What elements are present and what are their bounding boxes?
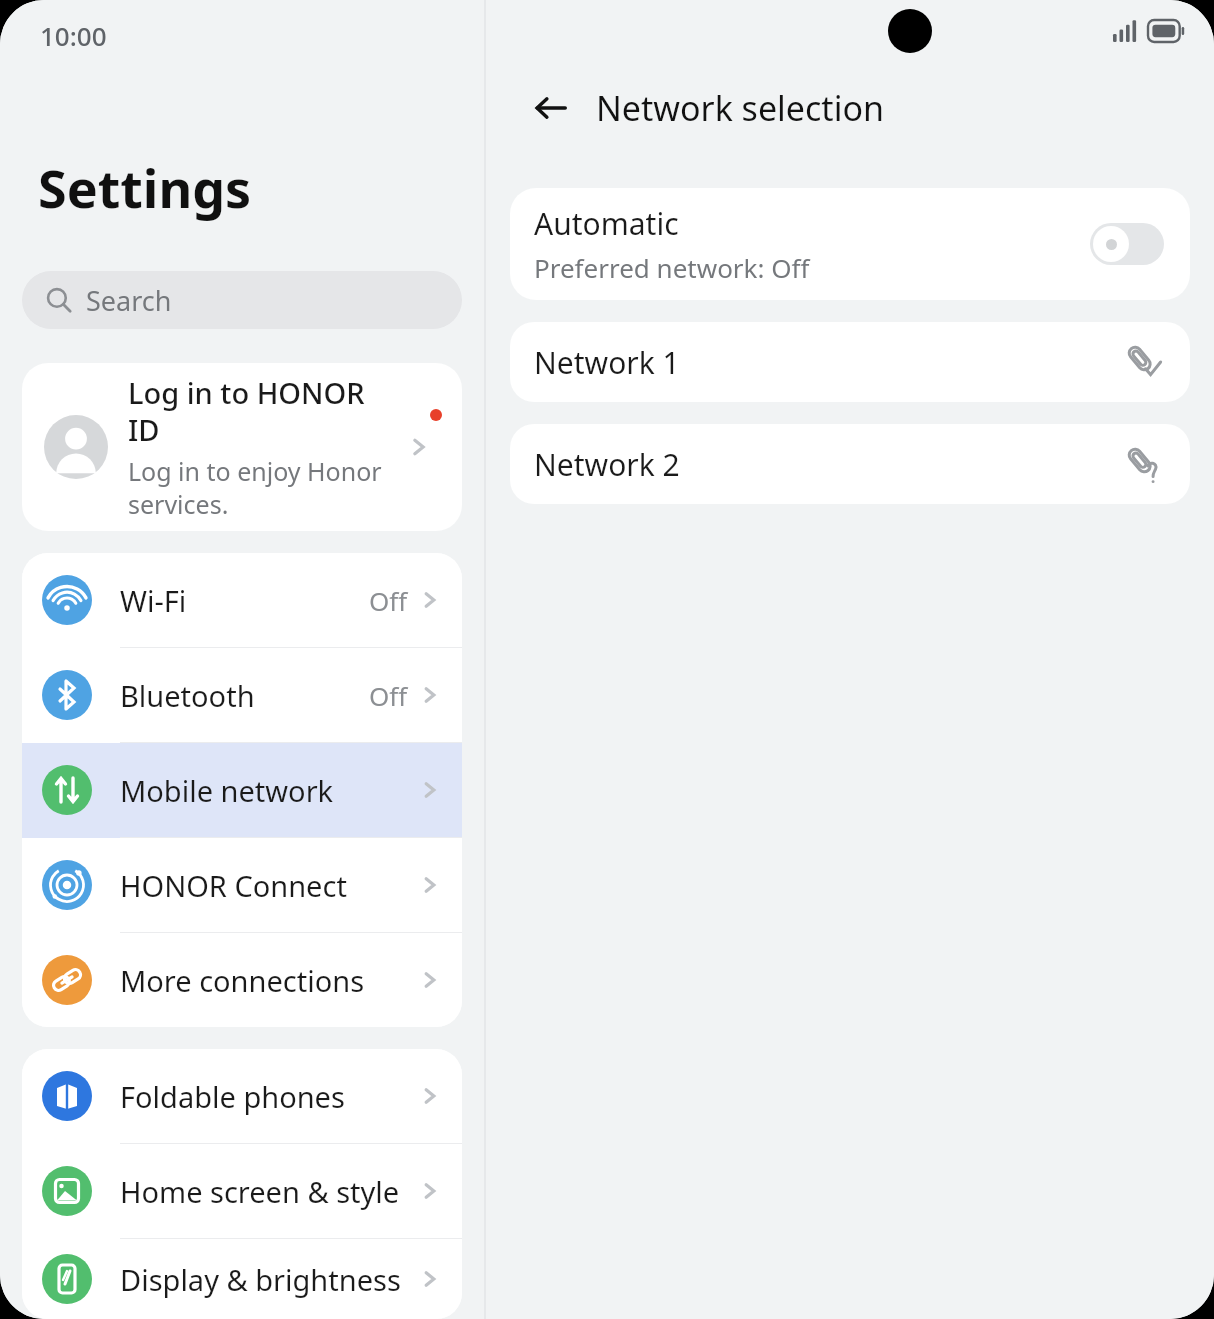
staticText: Foldable phones <box>120 1077 418 1116</box>
staticText: Automatic <box>534 203 679 244</box>
staticText: Bluetooth <box>120 676 369 715</box>
staticText: Settings <box>38 152 252 223</box>
button[interactable]: Network 2 <box>510 424 1190 504</box>
staticText: Off <box>369 583 408 618</box>
staticText: Wi-Fi <box>120 581 369 620</box>
button[interactable]: Network 1 <box>510 322 1190 402</box>
staticText: Preferred network: Off <box>534 250 810 285</box>
staticText: Network selection <box>596 85 884 131</box>
button[interactable]: Home screen & style <box>22 1144 462 1239</box>
button[interactable]: Wi-Fi <box>22 553 462 648</box>
staticText: Search <box>86 282 172 319</box>
staticText: Network 1 <box>534 342 1122 383</box>
button[interactable]: Log in to HONOR ID <box>22 363 462 531</box>
staticText: Log in to HONOR ID <box>128 373 396 450</box>
button[interactable]: Automatic toggle <box>1090 223 1164 265</box>
staticText: More connections <box>120 961 418 1000</box>
staticText: Mobile network <box>120 771 418 810</box>
staticText: Off <box>369 678 408 713</box>
staticText: Log in to enjoy Honor services. <box>128 454 396 521</box>
staticText: 10:00 <box>40 18 107 53</box>
staticText: Network 2 <box>534 444 1122 485</box>
button[interactable]: Automatic <box>510 188 1190 300</box>
button[interactable]: Foldable phones <box>22 1049 462 1144</box>
staticText: Display & brightness <box>120 1260 418 1299</box>
button[interactable]: Mobile network <box>22 743 462 838</box>
staticText: Home screen & style <box>120 1172 418 1211</box>
button[interactable]: Search <box>22 271 462 329</box>
button[interactable]: More connections <box>22 933 462 1027</box>
button[interactable]: HONOR Connect <box>22 838 462 933</box>
staticText: HONOR Connect <box>120 866 418 905</box>
button[interactable]: Bluetooth <box>22 648 462 743</box>
button[interactable]: Display & brightness <box>22 1239 462 1319</box>
button[interactable]: Back <box>528 85 574 131</box>
